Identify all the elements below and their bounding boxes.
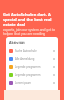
staticText: Alle Anmeldung [15, 57, 35, 61]
button[interactable]: Lorem ipsum [9, 79, 55, 87]
staticText: Lorem ipsum [15, 81, 32, 85]
staticText: experts, join our system and get to help… [3, 28, 61, 36]
button[interactable]: Legende prograrmm [9, 71, 55, 79]
staticText: Get AutoSchulen dart. A special and the … [3, 12, 61, 27]
staticText: Suche Autoschule [15, 49, 37, 53]
button[interactable]: Legende prograrmm [9, 63, 55, 71]
staticText: Legende prograrmm [15, 73, 41, 77]
staticText: Aktivität [9, 40, 25, 45]
button[interactable]: Alle Anmeldung [9, 55, 55, 63]
staticText: Legende prograrmm [15, 65, 41, 69]
button[interactable]: Suche Autoschule [9, 47, 55, 55]
